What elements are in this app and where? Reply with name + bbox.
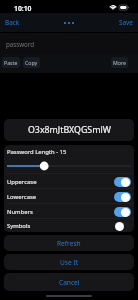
button[interactable]: Save	[114, 15, 138, 30]
button[interactable]: More options	[61, 19, 77, 27]
button[interactable]: Uppercase	[114, 177, 131, 187]
staticText: Cancel	[59, 278, 80, 287]
button[interactable]: More	[111, 57, 128, 68]
button[interactable]	[7, 159, 131, 173]
button[interactable]: O3x8mJtBXQGSmlW	[4, 119, 134, 141]
button[interactable]: Refresh	[4, 235, 134, 251]
staticText: Lowercase	[7, 193, 37, 201]
button[interactable]: Symbols	[114, 221, 131, 231]
button[interactable]: Uppercase	[4, 174, 134, 189]
staticText: Copy	[25, 59, 38, 66]
button[interactable]: Lowercase	[114, 192, 131, 202]
staticText: password	[6, 40, 35, 48]
staticText: Uppercase	[7, 178, 37, 186]
button[interactable]: Numbers	[4, 204, 134, 219]
staticText: Numbers	[7, 208, 33, 216]
staticText: More	[113, 59, 126, 66]
staticText: Refresh	[57, 239, 81, 248]
staticText: Save	[119, 18, 133, 27]
staticText: Symbols	[7, 222, 31, 230]
button[interactable]: Symbols	[4, 219, 134, 232]
staticText: 10:10	[14, 4, 32, 13]
button[interactable]: password	[0, 33, 138, 54]
button[interactable]: Lowercase	[4, 189, 134, 204]
staticText: O3x8mJtBXQGSmlW	[28, 124, 111, 136]
staticText: Paste	[4, 59, 18, 66]
button[interactable]: Paste	[2, 57, 20, 68]
button[interactable]: Cancel	[4, 273, 134, 291]
button[interactable]: Numbers	[114, 207, 131, 217]
staticText: Back	[5, 18, 20, 27]
button[interactable]: Copy	[23, 57, 40, 68]
button[interactable]: Back	[0, 15, 25, 30]
button[interactable]: Use It	[4, 254, 134, 270]
staticText: Password Length - 15	[7, 148, 67, 156]
staticText: Use It	[60, 258, 79, 267]
